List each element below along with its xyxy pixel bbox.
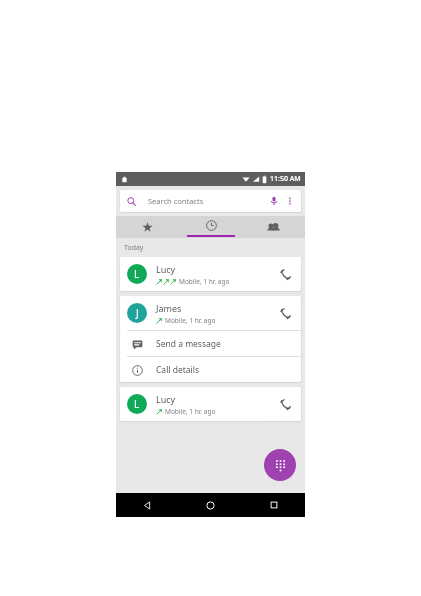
- staticText: Send a message: [156, 338, 221, 350]
- button[interactable]: Back: [116, 493, 179, 517]
- button[interactable]: Dialpad: [264, 449, 296, 481]
- button[interactable]: Recent apps: [242, 493, 305, 517]
- staticText: Mobile, 1 hr. ago: [165, 407, 216, 416]
- button[interactable]: Favorites: [116, 216, 179, 238]
- button[interactable]: L: [120, 257, 301, 291]
- button[interactable]: Call: [276, 304, 294, 322]
- button[interactable]: More options: [282, 193, 298, 209]
- staticText: James: [156, 302, 182, 314]
- staticText: Today: [124, 243, 144, 253]
- staticText: L: [134, 267, 140, 281]
- button[interactable]: Search: [120, 190, 301, 212]
- staticText: Call details: [156, 364, 200, 376]
- staticText: Mobile, 1 hr. ago: [165, 316, 216, 325]
- button[interactable]: Voice search: [266, 193, 282, 209]
- other: Search: [127, 197, 136, 206]
- staticText: Lucy: [156, 393, 176, 405]
- staticText: Search contacts: [148, 196, 204, 206]
- button[interactable]: Call: [276, 395, 294, 413]
- button[interactable]: Contacts: [242, 216, 305, 238]
- button[interactable]: Send a message: [120, 331, 301, 356]
- button[interactable]: L: [120, 387, 301, 421]
- staticText: Lucy: [156, 263, 176, 275]
- staticText: L: [134, 397, 140, 411]
- button[interactable]: Call details: [120, 357, 301, 382]
- button[interactable]: Call: [276, 265, 294, 283]
- staticText: Mobile, 1 hr. ago: [179, 277, 230, 286]
- button[interactable]: Recents: [179, 216, 242, 238]
- staticText: 11:50 AM: [270, 174, 301, 184]
- button[interactable]: Home: [179, 493, 242, 517]
- staticText: J: [136, 306, 139, 320]
- button[interactable]: J: [120, 296, 301, 330]
